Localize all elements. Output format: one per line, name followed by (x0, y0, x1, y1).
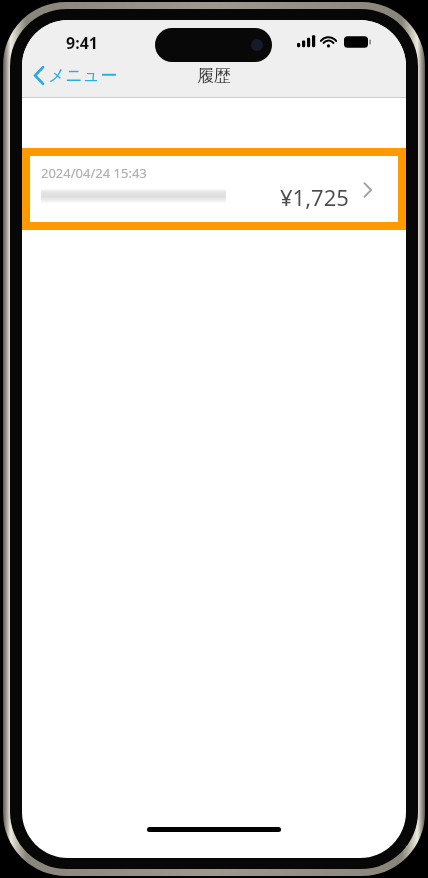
staticText: 9:41 (66, 32, 98, 54)
staticText: 2024/04/24 15:43 (41, 164, 147, 182)
staticText: ¥1,725 (280, 182, 349, 212)
staticText: メニュー (48, 65, 118, 86)
other: Status icons (297, 34, 379, 50)
staticText: 履歴 (22, 65, 406, 86)
button[interactable]: メニュー (28, 60, 123, 90)
other: Open transaction detail (363, 182, 372, 198)
button[interactable]: 2024/04/24 15:43 (22, 148, 406, 230)
